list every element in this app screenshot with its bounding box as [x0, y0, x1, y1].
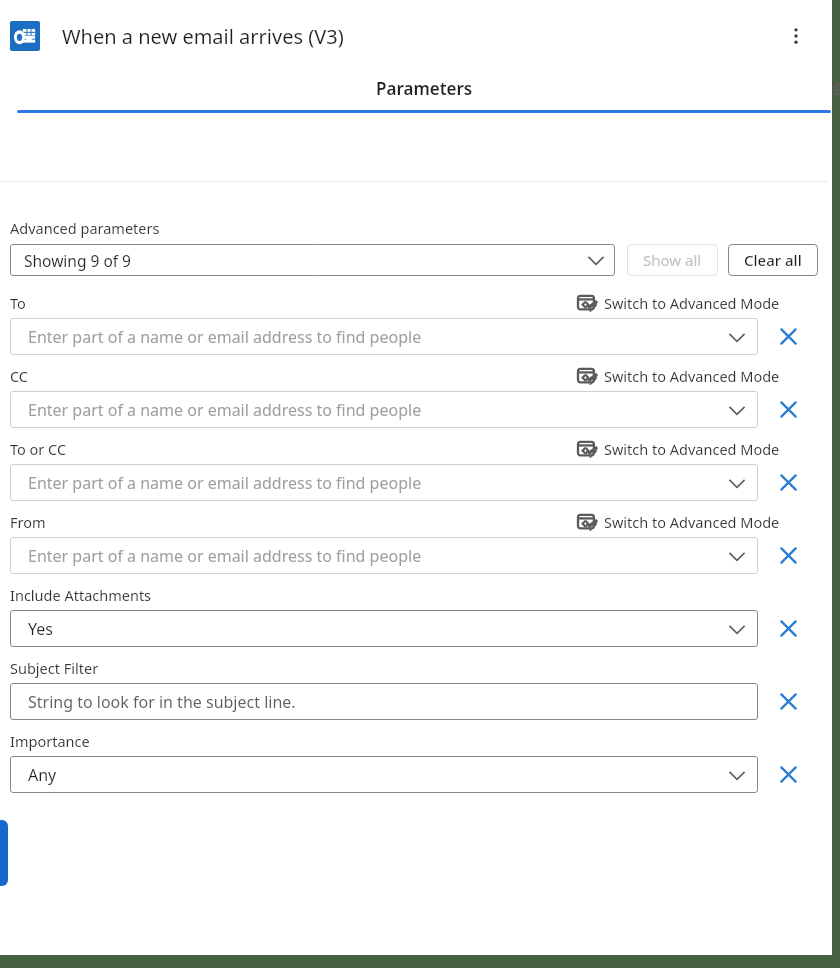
- button[interactable]: Parameters: [16, 72, 832, 113]
- staticText: Show all: [643, 250, 702, 270]
- button[interactable]: Switch to Advanced Mode: [578, 366, 818, 386]
- button[interactable]: Clear: [758, 318, 818, 355]
- button[interactable]: Enter part of a name or email address to…: [10, 537, 758, 574]
- staticText: Switch to Advanced Mode: [604, 439, 780, 459]
- staticText: CC: [10, 366, 29, 386]
- button[interactable]: Clear: [758, 756, 818, 793]
- button[interactable]: Switch to Advanced Mode: [578, 512, 818, 532]
- button[interactable]: Clear all: [728, 244, 818, 276]
- staticText: String to look for in the subject line.: [28, 691, 296, 713]
- staticText: Yes: [28, 618, 53, 640]
- staticText: Any: [28, 764, 57, 786]
- button[interactable]: Any: [10, 756, 758, 793]
- button[interactable]: Clear: [758, 391, 818, 428]
- staticText: From: [10, 512, 46, 532]
- button[interactable]: Yes: [10, 610, 758, 647]
- button[interactable]: Enter part of a name or email address to…: [10, 464, 758, 501]
- button[interactable]: Clear: [758, 537, 818, 574]
- staticText: Parameters: [376, 77, 473, 100]
- button[interactable]: Switch to Advanced Mode: [578, 439, 818, 459]
- button[interactable]: Switch to Advanced Mode: [578, 293, 818, 313]
- button[interactable]: String to look for in the subject line.: [10, 683, 758, 720]
- button[interactable]: Clear: [758, 610, 818, 647]
- button[interactable]: More options: [774, 14, 818, 58]
- button[interactable]: Enter part of a name or email address to…: [10, 318, 758, 355]
- button[interactable]: Showing 9 of 9: [10, 244, 615, 276]
- staticText: Clear all: [744, 250, 802, 270]
- staticText: Include Attachments: [10, 585, 152, 605]
- staticText: Importance: [10, 731, 90, 751]
- staticText: To: [10, 293, 26, 313]
- staticText: To or CC: [10, 439, 67, 459]
- button[interactable]: Enter part of a name or email address to…: [10, 391, 758, 428]
- staticText: Showing 9 of 9: [24, 250, 131, 271]
- staticText: Switch to Advanced Mode: [604, 293, 780, 313]
- staticText: Advanced parameters: [10, 218, 160, 238]
- staticText: Enter part of a name or email address to…: [28, 545, 422, 567]
- button[interactable]: Show all: [627, 244, 718, 276]
- staticText: Enter part of a name or email address to…: [28, 326, 422, 348]
- staticText: Enter part of a name or email address to…: [28, 399, 422, 421]
- staticText: When a new email arrives (V3): [62, 23, 344, 50]
- staticText: Enter part of a name or email address to…: [28, 472, 422, 494]
- button[interactable]: Clear: [758, 464, 818, 501]
- staticText: Switch to Advanced Mode: [604, 512, 780, 532]
- button[interactable]: Clear: [758, 683, 818, 720]
- staticText: Subject Filter: [10, 658, 99, 678]
- staticText: Switch to Advanced Mode: [604, 366, 780, 386]
